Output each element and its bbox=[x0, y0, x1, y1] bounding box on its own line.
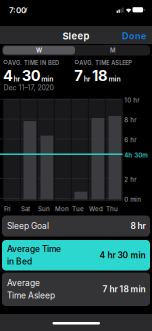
staticText: Thu bbox=[106, 205, 118, 213]
staticText: 30 bbox=[22, 67, 41, 85]
staticText: hr bbox=[13, 75, 20, 83]
staticText: W bbox=[36, 47, 42, 54]
staticText: AVG. TIME IN BED bbox=[8, 60, 59, 66]
button[interactable]: Average Time bbox=[2, 240, 150, 270]
staticText: Sun bbox=[38, 205, 50, 213]
staticText: 4 bbox=[3, 67, 13, 85]
staticText: 7 bbox=[74, 67, 83, 85]
staticText: in Bed bbox=[7, 256, 32, 267]
staticText: AVG. TIME ASLEEP bbox=[79, 60, 132, 66]
button[interactable]: W bbox=[3, 46, 75, 54]
staticText: Time Asleep bbox=[7, 290, 55, 301]
staticText: min bbox=[41, 75, 53, 83]
staticText: hr bbox=[84, 75, 91, 83]
staticText: Dec 11–17, 2020 bbox=[3, 84, 53, 92]
staticText: Done bbox=[122, 30, 146, 41]
staticText: Fri bbox=[4, 205, 11, 213]
staticText: Sat bbox=[21, 205, 30, 213]
staticText: 6 hr bbox=[124, 136, 136, 144]
staticText: 4h 30m bbox=[124, 151, 148, 159]
staticText: 8 hr bbox=[130, 221, 145, 231]
button[interactable]: Sleep Goal bbox=[2, 215, 150, 236]
staticText: 4 hr 30 min bbox=[99, 250, 145, 260]
staticText: 18 bbox=[92, 67, 108, 85]
staticText: Sleep Goal bbox=[7, 221, 49, 231]
staticText: Sleep bbox=[62, 30, 89, 42]
staticText: 0 min bbox=[124, 196, 141, 203]
staticText: 2 hr bbox=[124, 176, 136, 183]
staticText: Average Time bbox=[7, 244, 61, 254]
staticText: Wed bbox=[89, 205, 103, 213]
staticText: Mon bbox=[55, 205, 69, 213]
button[interactable]: Done bbox=[122, 30, 146, 41]
staticText: M bbox=[110, 47, 116, 54]
staticText: Average bbox=[7, 278, 40, 288]
staticText: min bbox=[108, 75, 120, 83]
staticText: 8 hr bbox=[124, 116, 136, 124]
button[interactable]: M bbox=[77, 46, 149, 54]
staticText: Tue bbox=[72, 205, 84, 213]
staticText: 7 hr 18 min bbox=[102, 284, 145, 294]
button[interactable]: Average bbox=[2, 272, 150, 306]
staticText: 10 hr bbox=[124, 97, 139, 104]
staticText: 7:00 bbox=[9, 5, 26, 15]
